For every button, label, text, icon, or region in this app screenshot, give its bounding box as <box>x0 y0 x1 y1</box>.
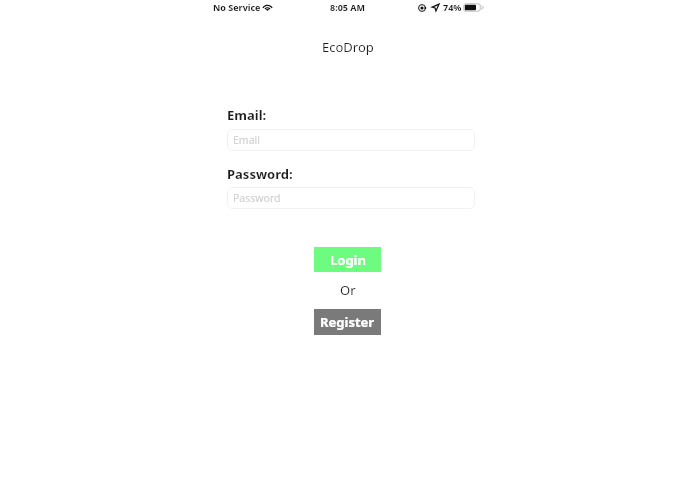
staticText: No Service <box>213 1 261 13</box>
button[interactable]: Login <box>314 247 381 272</box>
staticText: Or <box>340 281 356 299</box>
staticText: Login <box>330 251 366 269</box>
button[interactable]: Email <box>227 129 475 151</box>
other: Location <box>432 4 439 11</box>
staticText: 8:05 AM <box>330 1 366 13</box>
other: Wi-Fi <box>262 4 273 11</box>
button[interactable]: Register <box>314 309 381 335</box>
staticText: Password: <box>227 165 293 183</box>
button[interactable]: Password <box>227 187 475 209</box>
other: Battery 74 percent <box>463 3 484 12</box>
staticText: EcoDrop <box>322 38 374 56</box>
staticText: Email: <box>227 106 267 124</box>
staticText: Email <box>233 133 260 147</box>
other: Focus mode <box>418 4 426 12</box>
staticText: Register <box>320 313 375 331</box>
staticText: Password <box>233 191 281 205</box>
staticText: 74% <box>443 1 462 13</box>
